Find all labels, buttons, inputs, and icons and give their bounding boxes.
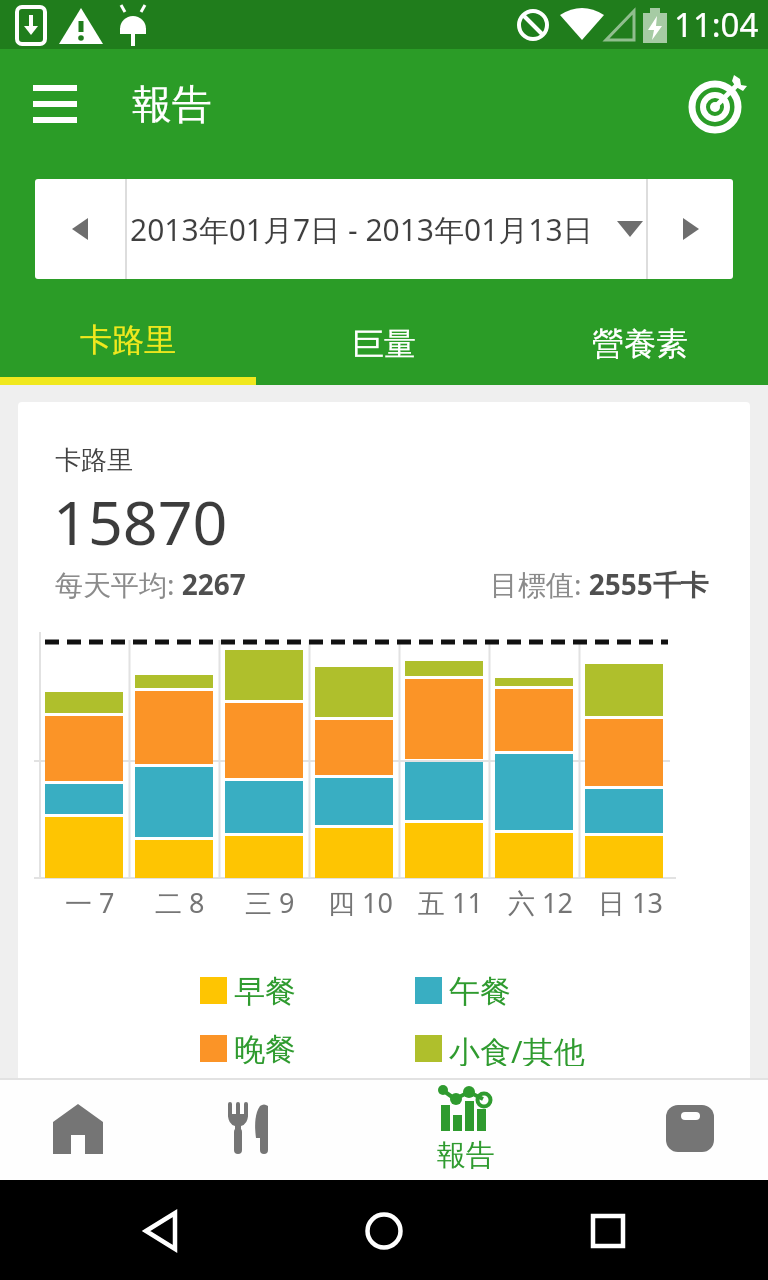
- staticText: 15870: [53, 480, 228, 563]
- staticText: 三 9: [245, 884, 295, 921]
- staticText: 卡路里: [80, 320, 176, 360]
- button[interactable]: [35, 179, 125, 279]
- staticText: 11:04: [674, 2, 759, 47]
- staticText: 日 13: [598, 884, 663, 921]
- staticText: 六 12: [508, 884, 573, 921]
- staticText: 五 11: [418, 884, 483, 921]
- staticText: 一 7: [65, 884, 115, 921]
- staticText: 巨量: [352, 324, 416, 364]
- button[interactable]: 2013年01月7日 - 2013年01月13日: [127, 179, 646, 279]
- staticText: 卡路里: [55, 444, 133, 477]
- button[interactable]: 營養素: [512, 302, 768, 385]
- staticText: 每天平均: 2267: [55, 565, 246, 603]
- staticText: 營養素: [592, 324, 688, 364]
- staticText: 二 8: [155, 884, 205, 921]
- button[interactable]: 巨量: [256, 302, 512, 385]
- button[interactable]: 卡路里: [0, 302, 256, 385]
- staticText: 小食/其他: [449, 1030, 585, 1066]
- button[interactable]: [683, 69, 753, 139]
- staticText: 報告: [437, 1137, 495, 1174]
- button[interactable]: [642, 1078, 738, 1180]
- staticText: 四 10: [328, 884, 393, 921]
- button[interactable]: [648, 179, 733, 279]
- staticText: 午餐: [449, 972, 511, 1008]
- staticText: 早餐: [234, 972, 296, 1008]
- staticText: 報告: [132, 79, 212, 129]
- staticText: 晚餐: [234, 1030, 296, 1066]
- button[interactable]: [30, 1078, 126, 1180]
- staticText: 目標值: 2555千卡: [490, 565, 709, 603]
- button[interactable]: [20, 69, 90, 139]
- staticText: 2013年01月7日 - 2013年01月13日: [130, 209, 593, 250]
- button[interactable]: [201, 1078, 297, 1180]
- button[interactable]: 報告: [418, 1078, 514, 1180]
